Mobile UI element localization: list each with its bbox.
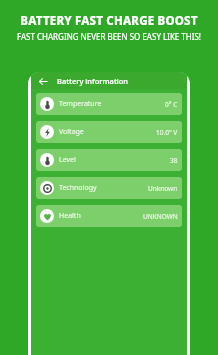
button[interactable]: Health <box>36 205 182 227</box>
staticText: Health <box>59 211 81 221</box>
staticText: FAST CHARGING NEVER BEEN SO EASY LIKE TH… <box>17 31 201 42</box>
staticText: Level <box>59 155 76 165</box>
button[interactable]: Temperature <box>36 93 182 115</box>
staticText: Unknown <box>148 184 178 193</box>
staticText: 38 <box>170 156 178 165</box>
staticText: 10.0" V <box>156 128 178 137</box>
button[interactable]: Back <box>36 74 50 88</box>
staticText: BATTERY FAST CHARGE BOOST <box>20 13 198 29</box>
staticText: Temperature <box>59 99 102 109</box>
staticText: Technology <box>59 183 97 193</box>
staticText: Battery information <box>57 76 129 86</box>
button[interactable]: Voltage <box>36 121 182 143</box>
staticText: 0° C <box>165 100 178 109</box>
button[interactable]: Level <box>36 149 182 171</box>
staticText: Voltage <box>59 127 84 137</box>
staticText: UNKNOWN <box>143 212 178 221</box>
button[interactable]: Technology <box>36 177 182 199</box>
